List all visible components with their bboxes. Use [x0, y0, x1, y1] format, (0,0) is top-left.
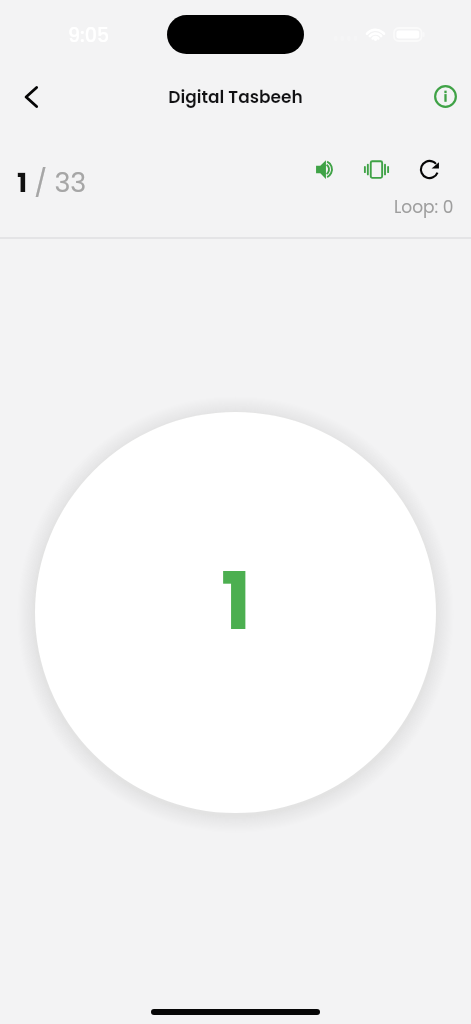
- staticText: 1 / 33: [17, 164, 87, 202]
- button[interactable]: Sound on: [304, 149, 344, 189]
- staticText: 1: [221, 545, 252, 657]
- button[interactable]: Reset counter: [409, 149, 449, 189]
- button[interactable]: Back: [9, 75, 53, 119]
- staticText: Loop: 0: [394, 195, 454, 219]
- button[interactable]: Information: [423, 74, 467, 118]
- button[interactable]: Tap to count: [35, 412, 436, 813]
- staticText: Digital Tasbeeh: [0, 85, 471, 109]
- button[interactable]: Vibration on: [356, 149, 396, 189]
- staticText: 9:05: [68, 22, 110, 49]
